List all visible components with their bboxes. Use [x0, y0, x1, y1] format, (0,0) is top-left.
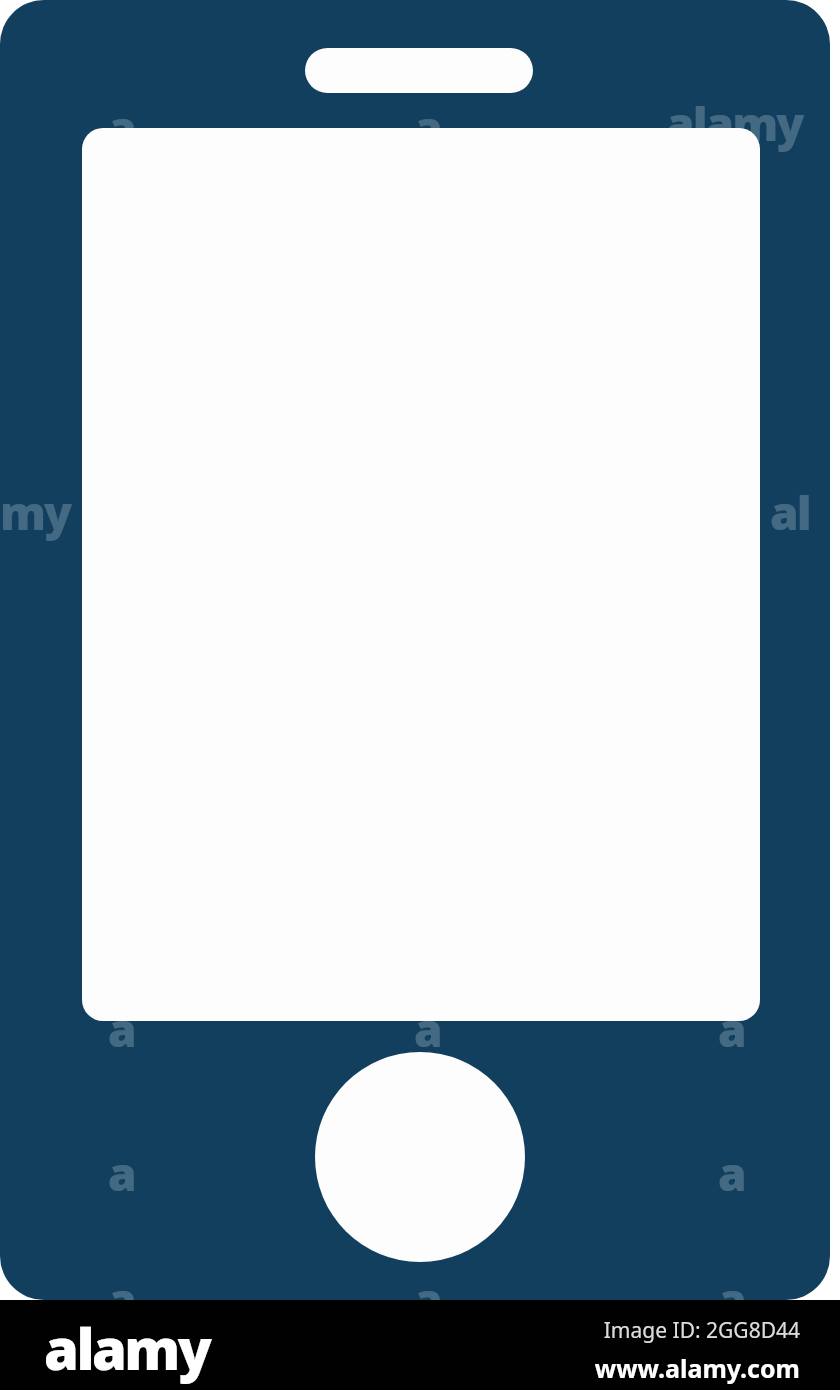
staticText: a: [108, 96, 135, 159]
button[interactable]: www.alamy.com: [594, 1351, 800, 1385]
staticText: a: [414, 96, 441, 159]
staticText: a: [108, 998, 135, 1061]
button[interactable]: Phone display screen: [82, 128, 760, 1021]
staticText: a: [718, 1142, 745, 1205]
button[interactable]: alamy: [44, 1310, 210, 1386]
staticText: a: [718, 998, 745, 1061]
staticText: my: [0, 481, 71, 544]
staticText: a: [414, 1268, 441, 1331]
staticText: al: [770, 481, 810, 544]
button[interactable]: Home button: [315, 1052, 525, 1262]
staticText: a: [108, 1268, 135, 1331]
staticText: Image ID: 2GG8D44: [603, 1316, 800, 1345]
staticText: a: [108, 1142, 135, 1205]
staticText: alamy: [666, 92, 803, 155]
button[interactable]: Smartphone device illustration: [0, 0, 830, 1300]
staticText: a: [414, 998, 441, 1061]
staticText: a: [718, 1268, 745, 1331]
